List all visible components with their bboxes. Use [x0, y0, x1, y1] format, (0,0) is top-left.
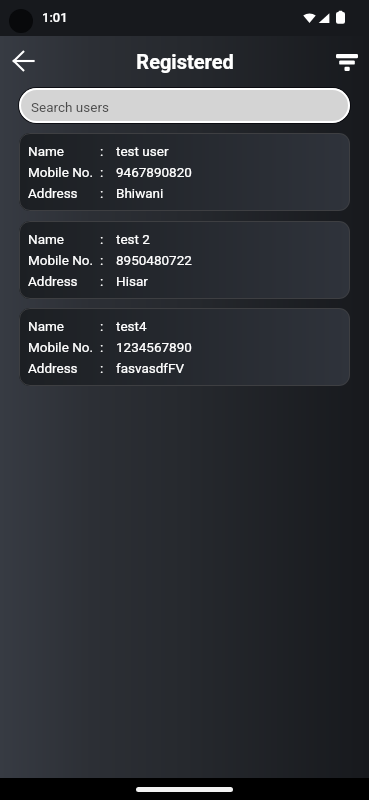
button[interactable]: Name	[19, 133, 350, 211]
button[interactable]: Filter	[325, 39, 369, 83]
staticText: Name	[28, 231, 100, 247]
staticText: :	[100, 318, 104, 334]
staticText: 9467890820	[116, 164, 192, 180]
staticText: 8950480722	[116, 252, 192, 268]
button[interactable]: Back	[0, 39, 44, 83]
staticText: :	[100, 164, 104, 180]
staticText: Registered	[136, 50, 234, 73]
staticText: :	[100, 143, 104, 159]
button[interactable]: Name	[19, 308, 350, 386]
staticText: Name	[28, 318, 100, 334]
staticText: test 2	[116, 231, 150, 247]
staticText: Mobile No.	[28, 252, 100, 268]
staticText: test user	[116, 143, 169, 159]
staticText: :	[100, 339, 104, 355]
staticText: Search users	[31, 99, 109, 115]
staticText: fasvasdfFV	[116, 360, 185, 376]
staticText: 1:01	[42, 10, 68, 25]
staticText: Address	[28, 360, 100, 376]
staticText: Address	[28, 273, 100, 289]
staticText: Hisar	[116, 273, 148, 289]
staticText: :	[100, 252, 104, 268]
staticText: test4	[116, 318, 147, 334]
staticText: 1234567890	[116, 339, 192, 355]
staticText: :	[100, 231, 104, 247]
staticText: Address	[28, 185, 100, 201]
staticText: Bhiwani	[116, 185, 164, 201]
staticText: Mobile No.	[28, 339, 100, 355]
staticText: Name	[28, 143, 100, 159]
staticText: Mobile No.	[28, 164, 100, 180]
staticText: :	[100, 185, 104, 201]
staticText: :	[100, 360, 104, 376]
button[interactable]: Search users	[19, 88, 350, 123]
staticText: :	[100, 273, 104, 289]
button[interactable]: Name	[19, 221, 350, 299]
